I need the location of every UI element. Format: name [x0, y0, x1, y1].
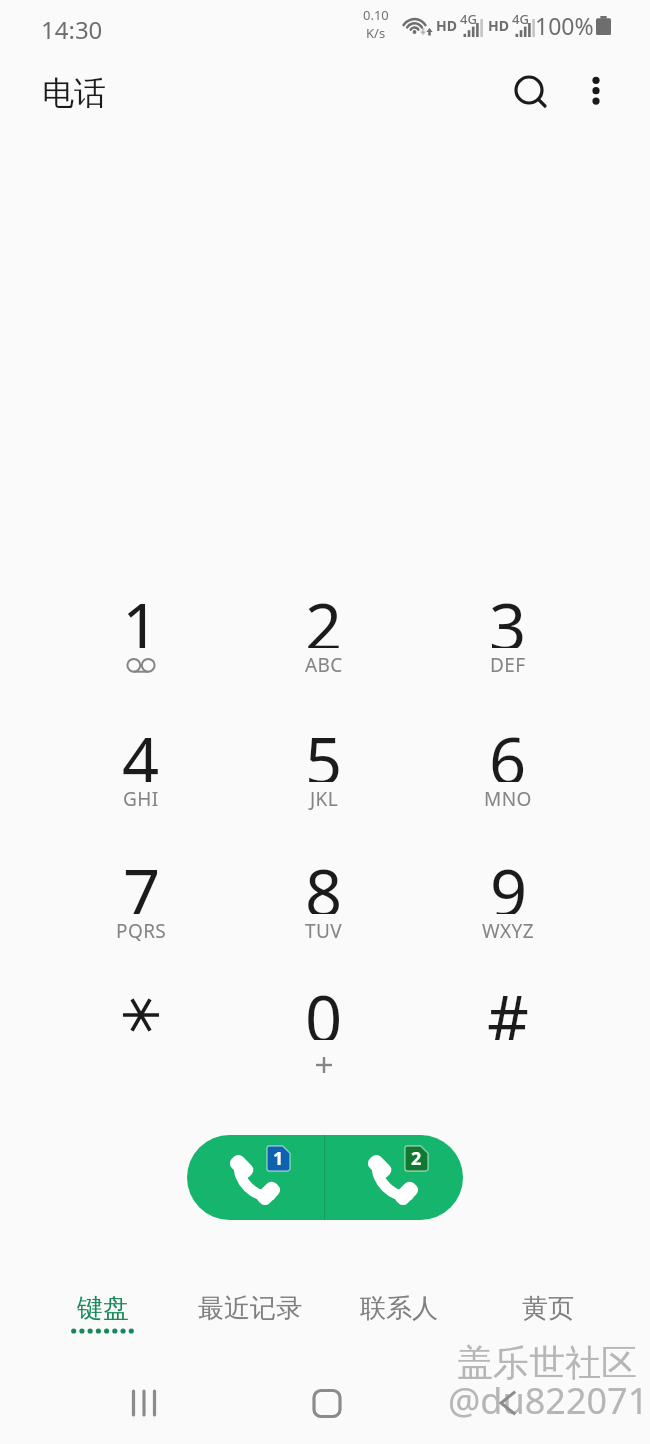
- button[interactable]: 9: [417, 848, 599, 976]
- button[interactable]: 0: [233, 974, 415, 1102]
- button[interactable]: 3: [417, 582, 599, 710]
- staticText: 盖乐世社区: [457, 1340, 637, 1385]
- staticText: 4: [122, 716, 160, 782]
- staticText: 14:30: [41, 13, 103, 46]
- staticText: 最近记录: [198, 1292, 302, 1325]
- staticText: TUV: [305, 918, 343, 944]
- staticText: 5: [305, 716, 343, 782]
- staticText: HD: [436, 16, 457, 35]
- staticText: 4G: [512, 10, 529, 28]
- staticText: DEF: [490, 652, 526, 678]
- button[interactable]: Search: [503, 65, 563, 125]
- staticText: HD: [488, 16, 509, 35]
- button[interactable]: Recents: [94, 1373, 194, 1433]
- button[interactable]: 1: [50, 582, 232, 710]
- button[interactable]: 联系人: [324, 1292, 473, 1352]
- staticText: 黄页: [522, 1292, 574, 1325]
- staticText: 2: [411, 1146, 422, 1171]
- staticText: MNO: [484, 786, 532, 812]
- button[interactable]: 最近记录: [176, 1292, 324, 1352]
- staticText: GHI: [123, 786, 159, 812]
- staticText: 键盘: [77, 1292, 129, 1325]
- staticText: #: [487, 974, 529, 1040]
- staticText: 0.10: [363, 6, 389, 24]
- staticText: K/s: [366, 24, 386, 42]
- staticText: 100%: [535, 10, 594, 41]
- button[interactable]: #: [417, 974, 599, 1102]
- staticText: 联系人: [360, 1292, 438, 1325]
- button[interactable]: 2: [233, 582, 415, 710]
- button[interactable]: More options: [566, 61, 626, 121]
- button[interactable]: [50, 974, 232, 1102]
- staticText: 7: [123, 848, 161, 914]
- staticText: 电话: [42, 73, 106, 113]
- button[interactable]: 5: [233, 716, 415, 844]
- staticText: 1: [273, 1146, 284, 1171]
- button[interactable]: 黄页: [473, 1292, 622, 1352]
- staticText: 8: [305, 848, 343, 914]
- staticText: 3: [489, 582, 527, 648]
- staticText: 6: [489, 716, 527, 782]
- staticText: 1: [122, 582, 160, 648]
- staticText: 0: [305, 974, 343, 1040]
- staticText: JKL: [310, 786, 339, 812]
- button[interactable]: 4: [50, 716, 232, 844]
- button[interactable]: 8: [233, 848, 415, 976]
- button[interactable]: 6: [417, 716, 599, 844]
- staticText: @du8220710: [448, 1376, 650, 1425]
- staticText: 2: [305, 582, 343, 648]
- button[interactable]: Home: [277, 1373, 377, 1433]
- staticText: WXYZ: [482, 918, 535, 944]
- button[interactable]: Call with SIM 2: [325, 1135, 463, 1220]
- button[interactable]: Call with SIM 1: [187, 1135, 324, 1220]
- staticText: 9: [490, 848, 528, 914]
- button[interactable]: 键盘: [28, 1292, 176, 1352]
- staticText: PQRS: [116, 918, 167, 944]
- button[interactable]: Back: [458, 1373, 558, 1433]
- button[interactable]: 7: [50, 848, 232, 976]
- staticText: ABC: [305, 652, 343, 678]
- staticText: 4G: [460, 10, 477, 28]
